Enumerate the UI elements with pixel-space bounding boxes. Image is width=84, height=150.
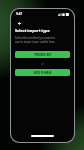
button[interactable]: SEED PHRASE [15,69,70,76]
button[interactable]: Back [16,20,23,27]
staticText: Select import type [15,28,50,33]
staticText: 9:41 [16,12,23,16]
staticText: PRIVATE KEY [34,53,52,57]
button[interactable]: PRIVATE KEY [15,51,70,58]
staticText: SEED PHRASE [33,71,52,75]
staticText: or [41,62,44,66]
staticText: Select the method you want to use to imp… [15,36,56,44]
